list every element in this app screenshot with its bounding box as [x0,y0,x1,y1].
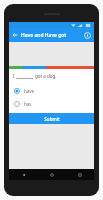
button[interactable]: has [9,97,94,110]
staticText: I [13,73,15,79]
staticText: has [24,101,32,107]
button[interactable]: Back [9,29,21,41]
staticText: got a dog. [35,73,57,79]
staticText: Submit [44,116,60,122]
button[interactable]: Back [9,169,38,180]
staticText: have [24,88,35,94]
button[interactable]: Info [81,29,94,42]
staticText: Have and Have got [21,32,81,39]
button[interactable]: Home [38,169,66,180]
button[interactable]: Recent apps [66,169,94,180]
button[interactable]: Submit [9,113,94,124]
button[interactable]: have [9,84,94,97]
